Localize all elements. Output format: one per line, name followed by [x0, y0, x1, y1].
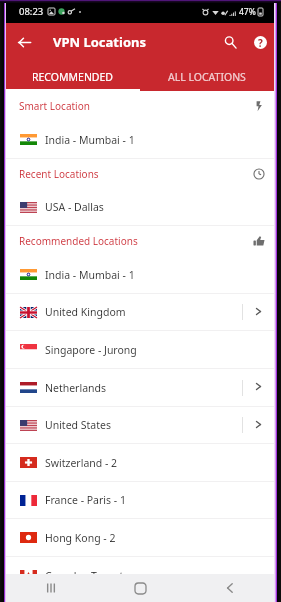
staticText: ALL LOCATIONS [168, 70, 246, 84]
staticText: Netherlands [45, 381, 107, 395]
button[interactable]: ALL LOCATIONS [140, 65, 274, 91]
staticText: France - Paris - 1 [45, 493, 126, 507]
staticText: 47% [239, 6, 256, 18]
button[interactable]: RECOMMENDED [6, 65, 140, 91]
button[interactable]: Search [217, 29, 243, 55]
button[interactable]: USA - Dallas [6, 189, 274, 225]
button[interactable]: Netherlands [6, 369, 274, 406]
button[interactable]: Recommended Locations [6, 226, 274, 256]
button[interactable]: Help [247, 29, 273, 55]
button[interactable]: India - Mumbai - 1 [6, 256, 274, 293]
button[interactable]: Singapore - Jurong [6, 331, 274, 368]
button[interactable]: Hong Kong - 2 [6, 519, 274, 556]
button[interactable]: Recent apps [6, 574, 96, 602]
staticText: RECOMMENDED [32, 70, 114, 84]
button[interactable]: Back [11, 29, 37, 55]
staticText: Canada - Toronto [45, 569, 130, 583]
staticText: Hong Kong - 2 [45, 531, 116, 545]
staticText: United States [45, 418, 111, 432]
button[interactable]: Home [96, 574, 185, 602]
button[interactable]: United States [6, 407, 274, 443]
button[interactable]: France - Paris - 1 [6, 482, 274, 518]
staticText: Switzerland - 2 [45, 456, 118, 470]
button[interactable]: India - Mumbai - 1 [6, 121, 274, 158]
button[interactable]: Canada - Toronto [6, 557, 274, 594]
button[interactable]: Smart Location [6, 91, 274, 121]
staticText: United Kingdom [45, 305, 126, 319]
staticText: India - Mumbai - 1 [45, 133, 135, 147]
staticText: Recommended Locations [19, 234, 138, 248]
button[interactable]: Back [185, 574, 274, 602]
staticText: Recent Locations [19, 167, 99, 181]
button[interactable]: United Kingdom [6, 294, 274, 330]
staticText: VPN Locations [53, 33, 146, 51]
staticText: USA - Dallas [45, 200, 104, 214]
staticText: ? [258, 36, 263, 49]
staticText: 08:23 [19, 5, 44, 18]
staticText: India - Mumbai - 1 [45, 268, 135, 282]
button[interactable]: Recent Locations [6, 159, 274, 189]
staticText: Smart Location [19, 99, 90, 113]
staticText: Singapore - Jurong [45, 343, 137, 357]
button[interactable]: Switzerland - 2 [6, 444, 274, 481]
